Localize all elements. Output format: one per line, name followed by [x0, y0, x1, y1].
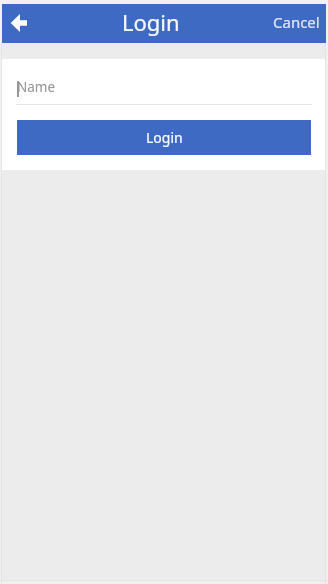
button[interactable]: Cancel	[263, 3, 326, 41]
staticText: Cancel	[273, 12, 320, 32]
staticText: Login	[122, 7, 180, 37]
button[interactable]: Name	[2, 78, 326, 105]
staticText: Name	[17, 78, 56, 96]
staticText: Login	[146, 128, 183, 147]
button[interactable]: Back	[2, 7, 35, 40]
button[interactable]: Login	[17, 120, 311, 155]
